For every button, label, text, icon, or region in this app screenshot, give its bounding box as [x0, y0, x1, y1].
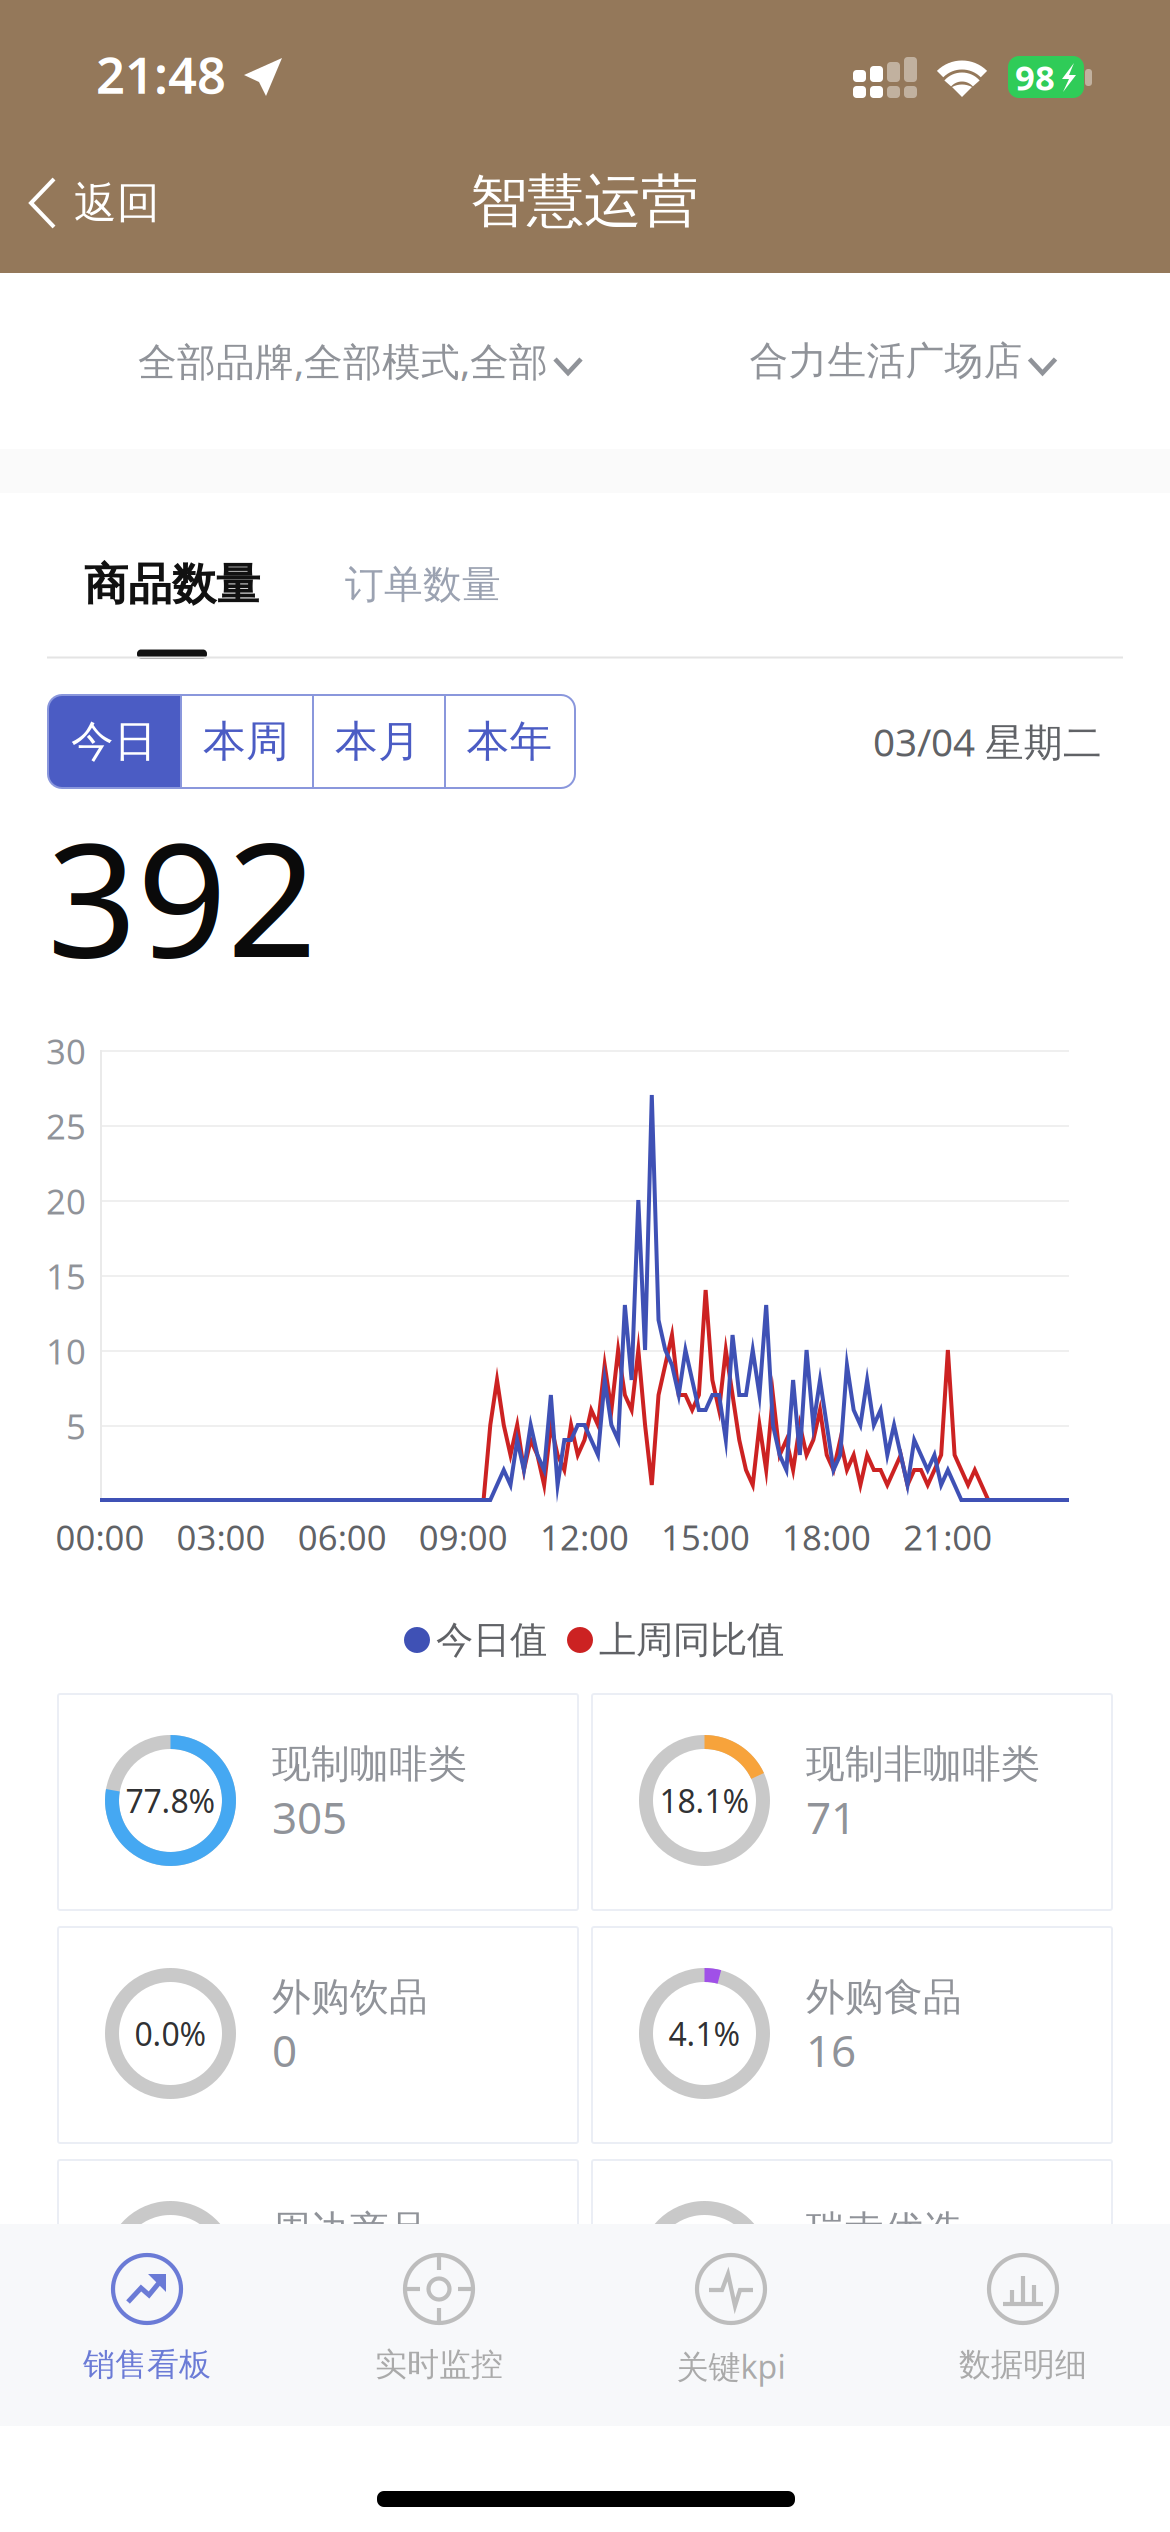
staticText: 5: [66, 1403, 86, 1449]
staticText: 30: [46, 1028, 86, 1074]
staticText: 现制咖啡类: [272, 1740, 467, 1788]
staticText: 16: [806, 2021, 856, 2079]
button[interactable]: 关键kpi: [585, 2224, 877, 2426]
staticText: 瑞幸优选: [806, 2206, 962, 2254]
button[interactable]: 0.0%: [58, 1927, 578, 2143]
staticText: 本月: [335, 715, 421, 768]
button[interactable]: 返回: [0, 150, 200, 273]
staticText: 77.8%: [125, 1779, 215, 1822]
staticText: 现制非咖啡类: [806, 1740, 1040, 1788]
button[interactable]: 77.8%: [58, 1694, 578, 1910]
staticText: 返回: [74, 177, 160, 229]
staticText: 12:00: [540, 1514, 629, 1560]
button[interactable]: 实时监控: [293, 2224, 585, 2426]
staticText: 关键kpi: [676, 2345, 785, 2387]
staticText: 25: [46, 1103, 86, 1149]
button[interactable]: 本月: [312, 695, 444, 788]
staticText: 00:00: [55, 1514, 144, 1560]
staticText: 实时监控: [375, 2345, 503, 2384]
staticText: 0.0%: [134, 2245, 206, 2288]
staticText: 4.1%: [668, 2012, 740, 2055]
staticText: 392: [47, 791, 317, 1000]
staticText: 98: [1015, 54, 1055, 100]
button[interactable]: 销售看板: [1, 2224, 293, 2426]
staticText: 18.1%: [659, 1779, 749, 1822]
staticText: 20: [46, 1178, 86, 1224]
staticText: 合力生活广场店: [749, 337, 1022, 385]
button[interactable]: 合力生活广场店: [704, 273, 1104, 449]
staticText: 商品数量: [84, 557, 260, 611]
staticText: 销售看板: [83, 2345, 211, 2384]
button[interactable]: 0.0%: [58, 2160, 578, 2376]
staticText: 15: [46, 1253, 86, 1299]
staticText: 今日值: [436, 1617, 547, 1663]
staticText: 03/04 星期二: [873, 716, 1102, 767]
staticText: 305: [272, 1788, 347, 1846]
button[interactable]: 18.1%: [592, 1694, 1112, 1910]
button[interactable]: 订单数量: [333, 493, 553, 657]
staticText: 外购饮品: [272, 1973, 428, 2021]
staticText: 21:00: [903, 1514, 992, 1560]
staticText: 0.0%: [134, 2012, 206, 2055]
staticText: 0.0%: [668, 2245, 740, 2288]
staticText: 订单数量: [345, 561, 501, 608]
staticText: 71: [806, 1788, 856, 1846]
button[interactable]: 本周: [180, 695, 312, 788]
staticText: 10: [46, 1328, 86, 1374]
staticText: 全部品牌,全部模式,全部: [138, 335, 548, 387]
button[interactable]: 4.1%: [592, 1927, 1112, 2143]
staticText: 外购食品: [806, 1973, 962, 2021]
staticText: 21:48: [96, 40, 226, 108]
button[interactable]: 全部品牌,全部模式,全部: [81, 273, 641, 449]
staticText: 06:00: [298, 1514, 387, 1560]
button[interactable]: 数据明细: [877, 2224, 1169, 2426]
staticText: 本周: [203, 715, 289, 768]
button[interactable]: 商品数量: [72, 493, 292, 657]
staticText: 今日: [71, 715, 157, 768]
staticText: 18:00: [782, 1514, 871, 1560]
staticText: 数据明细: [959, 2345, 1087, 2384]
staticText: 上周同比值: [599, 1617, 784, 1663]
button[interactable]: 今日: [48, 695, 180, 788]
staticText: 智慧运营: [470, 166, 698, 237]
staticText: 周边商品: [272, 2206, 428, 2254]
button[interactable]: 本年: [444, 695, 575, 788]
staticText: 03:00: [177, 1514, 266, 1560]
button[interactable]: 0.0%: [592, 2160, 1112, 2376]
staticText: 09:00: [419, 1514, 508, 1560]
staticText: 15:00: [661, 1514, 750, 1560]
staticText: 本年: [466, 715, 552, 768]
staticText: 0: [272, 2021, 297, 2079]
